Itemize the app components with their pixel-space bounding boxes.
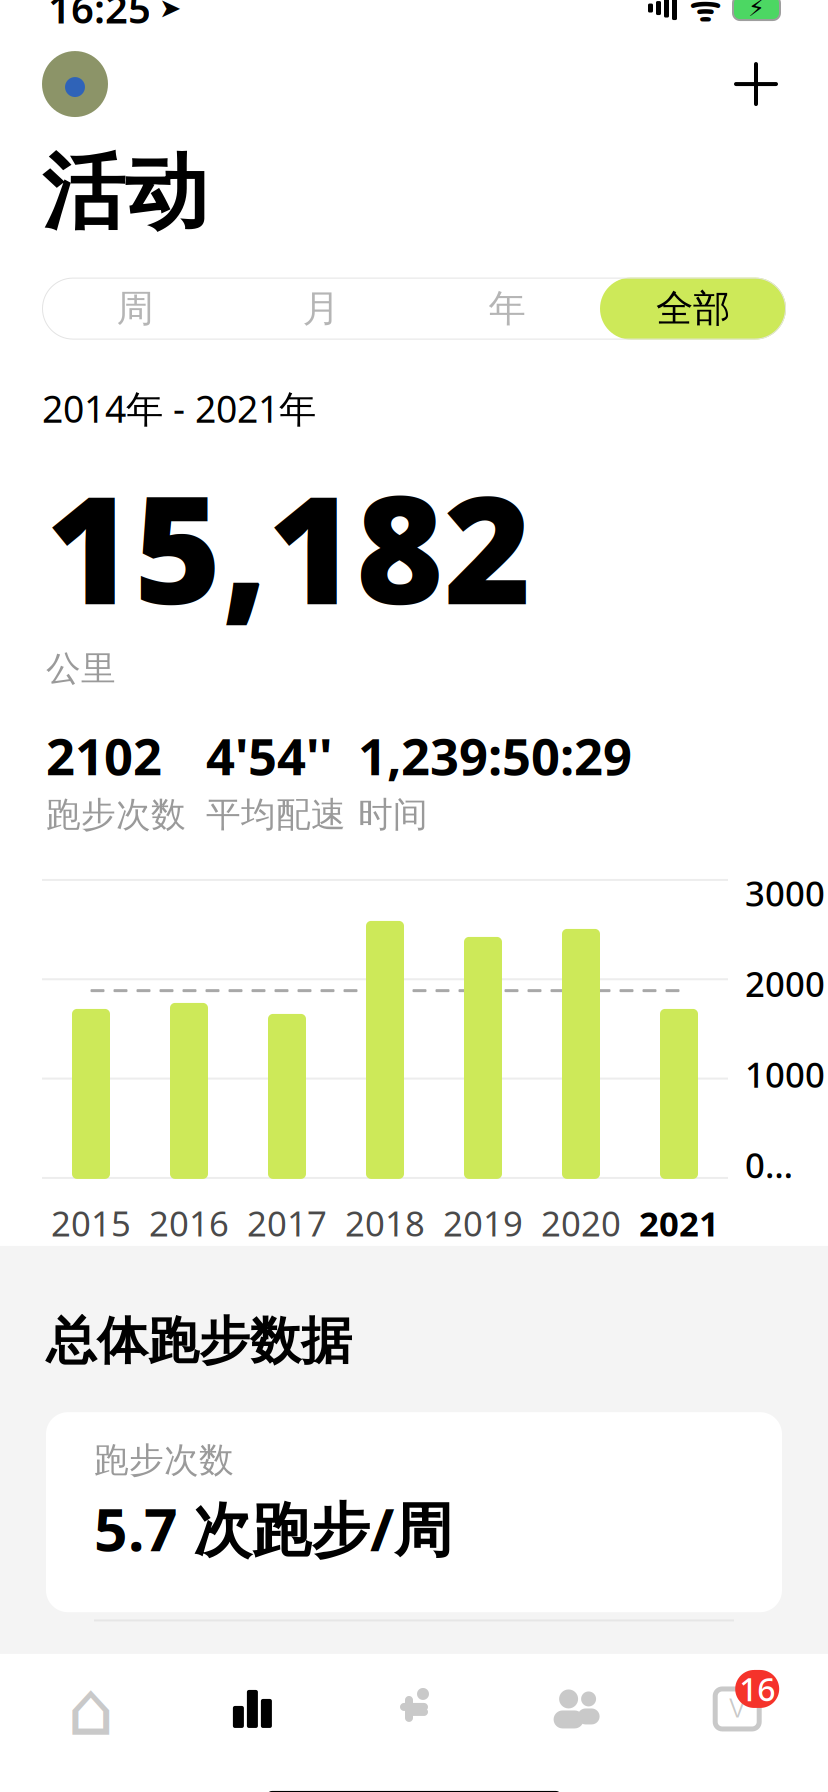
staticText: 2020	[541, 1200, 621, 1246]
staticText: 时间	[358, 793, 428, 836]
button[interactable]: Profile	[42, 51, 108, 117]
staticText: 2021	[639, 1200, 719, 1246]
staticText: 2017	[247, 1200, 327, 1246]
staticText: 公里	[46, 647, 116, 690]
staticText: 年	[488, 286, 525, 332]
staticText: 2000	[745, 961, 825, 1007]
staticText: 2019	[443, 1200, 523, 1246]
staticText: 16	[739, 1668, 775, 1710]
staticText: 1000	[745, 1051, 825, 1097]
staticText: 全部	[656, 286, 730, 332]
button[interactable]: Inbox, 16 unread	[656, 1670, 818, 1748]
button[interactable]: Add	[726, 54, 786, 114]
button[interactable]: 月	[228, 278, 414, 340]
button[interactable]: Home	[10, 1681, 172, 1737]
staticText: 2102	[46, 722, 162, 789]
staticText: 2014年 - 2021年	[42, 384, 316, 433]
staticText: 2018	[345, 1200, 425, 1246]
button[interactable]: Run	[333, 1681, 495, 1737]
staticText: ➤	[159, 0, 181, 23]
staticText: 0…	[745, 1142, 793, 1188]
staticText: 活动	[42, 142, 208, 243]
staticText: 2016	[149, 1200, 229, 1246]
staticText: v	[729, 1681, 745, 1727]
staticText: 跑步次数	[94, 1439, 234, 1481]
staticText: 5.7 次跑步/周	[94, 1489, 453, 1567]
staticText: 月	[302, 286, 339, 332]
staticText: 总体跑步数据	[46, 1310, 352, 1372]
staticText: 16:25	[48, 0, 151, 35]
button[interactable]: Club	[495, 1681, 656, 1737]
staticText: 平均配速	[206, 793, 346, 836]
staticText: ⚡︎	[748, 0, 765, 22]
button[interactable]: 全部	[600, 278, 786, 340]
staticText: 跑步次数	[46, 793, 186, 836]
button[interactable]: 年	[414, 278, 600, 340]
staticText: ⌂	[67, 1667, 114, 1751]
staticText: 4'54''	[206, 722, 332, 789]
staticText: 1,239:50:29	[358, 722, 632, 789]
button[interactable]: 周	[42, 278, 228, 340]
staticText: 2015	[51, 1200, 131, 1246]
staticText: 15,182	[46, 447, 532, 645]
staticText: 3000	[745, 870, 825, 916]
button[interactable]: Activity	[172, 1681, 333, 1737]
staticText: ᯤ	[689, 0, 721, 31]
staticText: 周	[116, 286, 153, 332]
